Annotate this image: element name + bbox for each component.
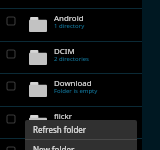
button[interactable]: New folder xyxy=(25,140,137,150)
button[interactable]: Android xyxy=(0,8,142,41)
staticText: 2 directories xyxy=(54,55,89,63)
staticText: DCIM xyxy=(54,46,75,57)
button[interactable]: Download xyxy=(0,73,142,106)
staticText: Folder is empty xyxy=(54,120,98,128)
button[interactable]: Refresh folder xyxy=(25,120,137,139)
staticText: flickr xyxy=(54,111,73,122)
staticText: Movies xyxy=(54,143,81,150)
staticText: Download xyxy=(54,78,92,89)
button[interactable]: Movies xyxy=(0,138,142,150)
staticText: 1 directory xyxy=(54,22,85,30)
button[interactable]: Pictures xyxy=(0,0,142,9)
button[interactable]: DCIM xyxy=(0,41,142,74)
staticText: Refresh folder xyxy=(33,124,87,135)
staticText: New folder xyxy=(33,144,75,150)
staticText: Folder is empty xyxy=(54,87,98,95)
staticText: Android xyxy=(54,13,84,24)
button[interactable]: flickr xyxy=(0,106,142,139)
